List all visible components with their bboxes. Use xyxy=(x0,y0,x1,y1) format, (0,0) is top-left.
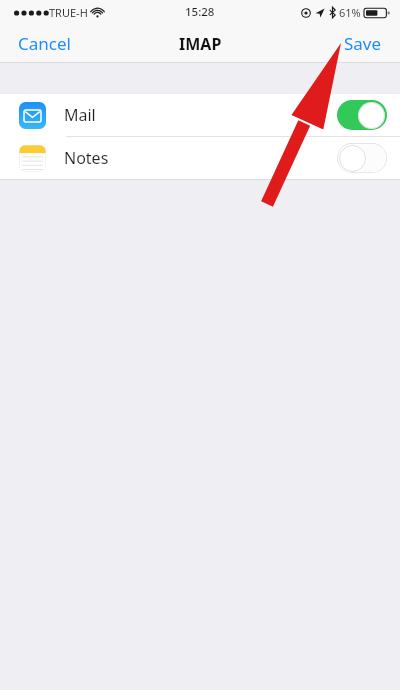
staticText: 15:28 xyxy=(185,4,215,20)
button[interactable]: Notes xyxy=(0,137,400,179)
button[interactable]: Cancel xyxy=(0,24,89,63)
staticText: Cancel xyxy=(18,32,71,55)
button[interactable]: Mail xyxy=(0,94,400,136)
button[interactable]: Notes toggle xyxy=(337,143,387,173)
staticText: IMAP xyxy=(179,33,222,55)
staticText: TRUE-H xyxy=(49,5,88,20)
button[interactable]: Save xyxy=(326,24,400,63)
staticText: Notes xyxy=(64,147,109,169)
button[interactable]: Mail toggle xyxy=(337,100,387,130)
staticText: 61% xyxy=(339,5,361,20)
staticText: Mail xyxy=(64,104,96,126)
staticText: Save xyxy=(344,32,382,55)
